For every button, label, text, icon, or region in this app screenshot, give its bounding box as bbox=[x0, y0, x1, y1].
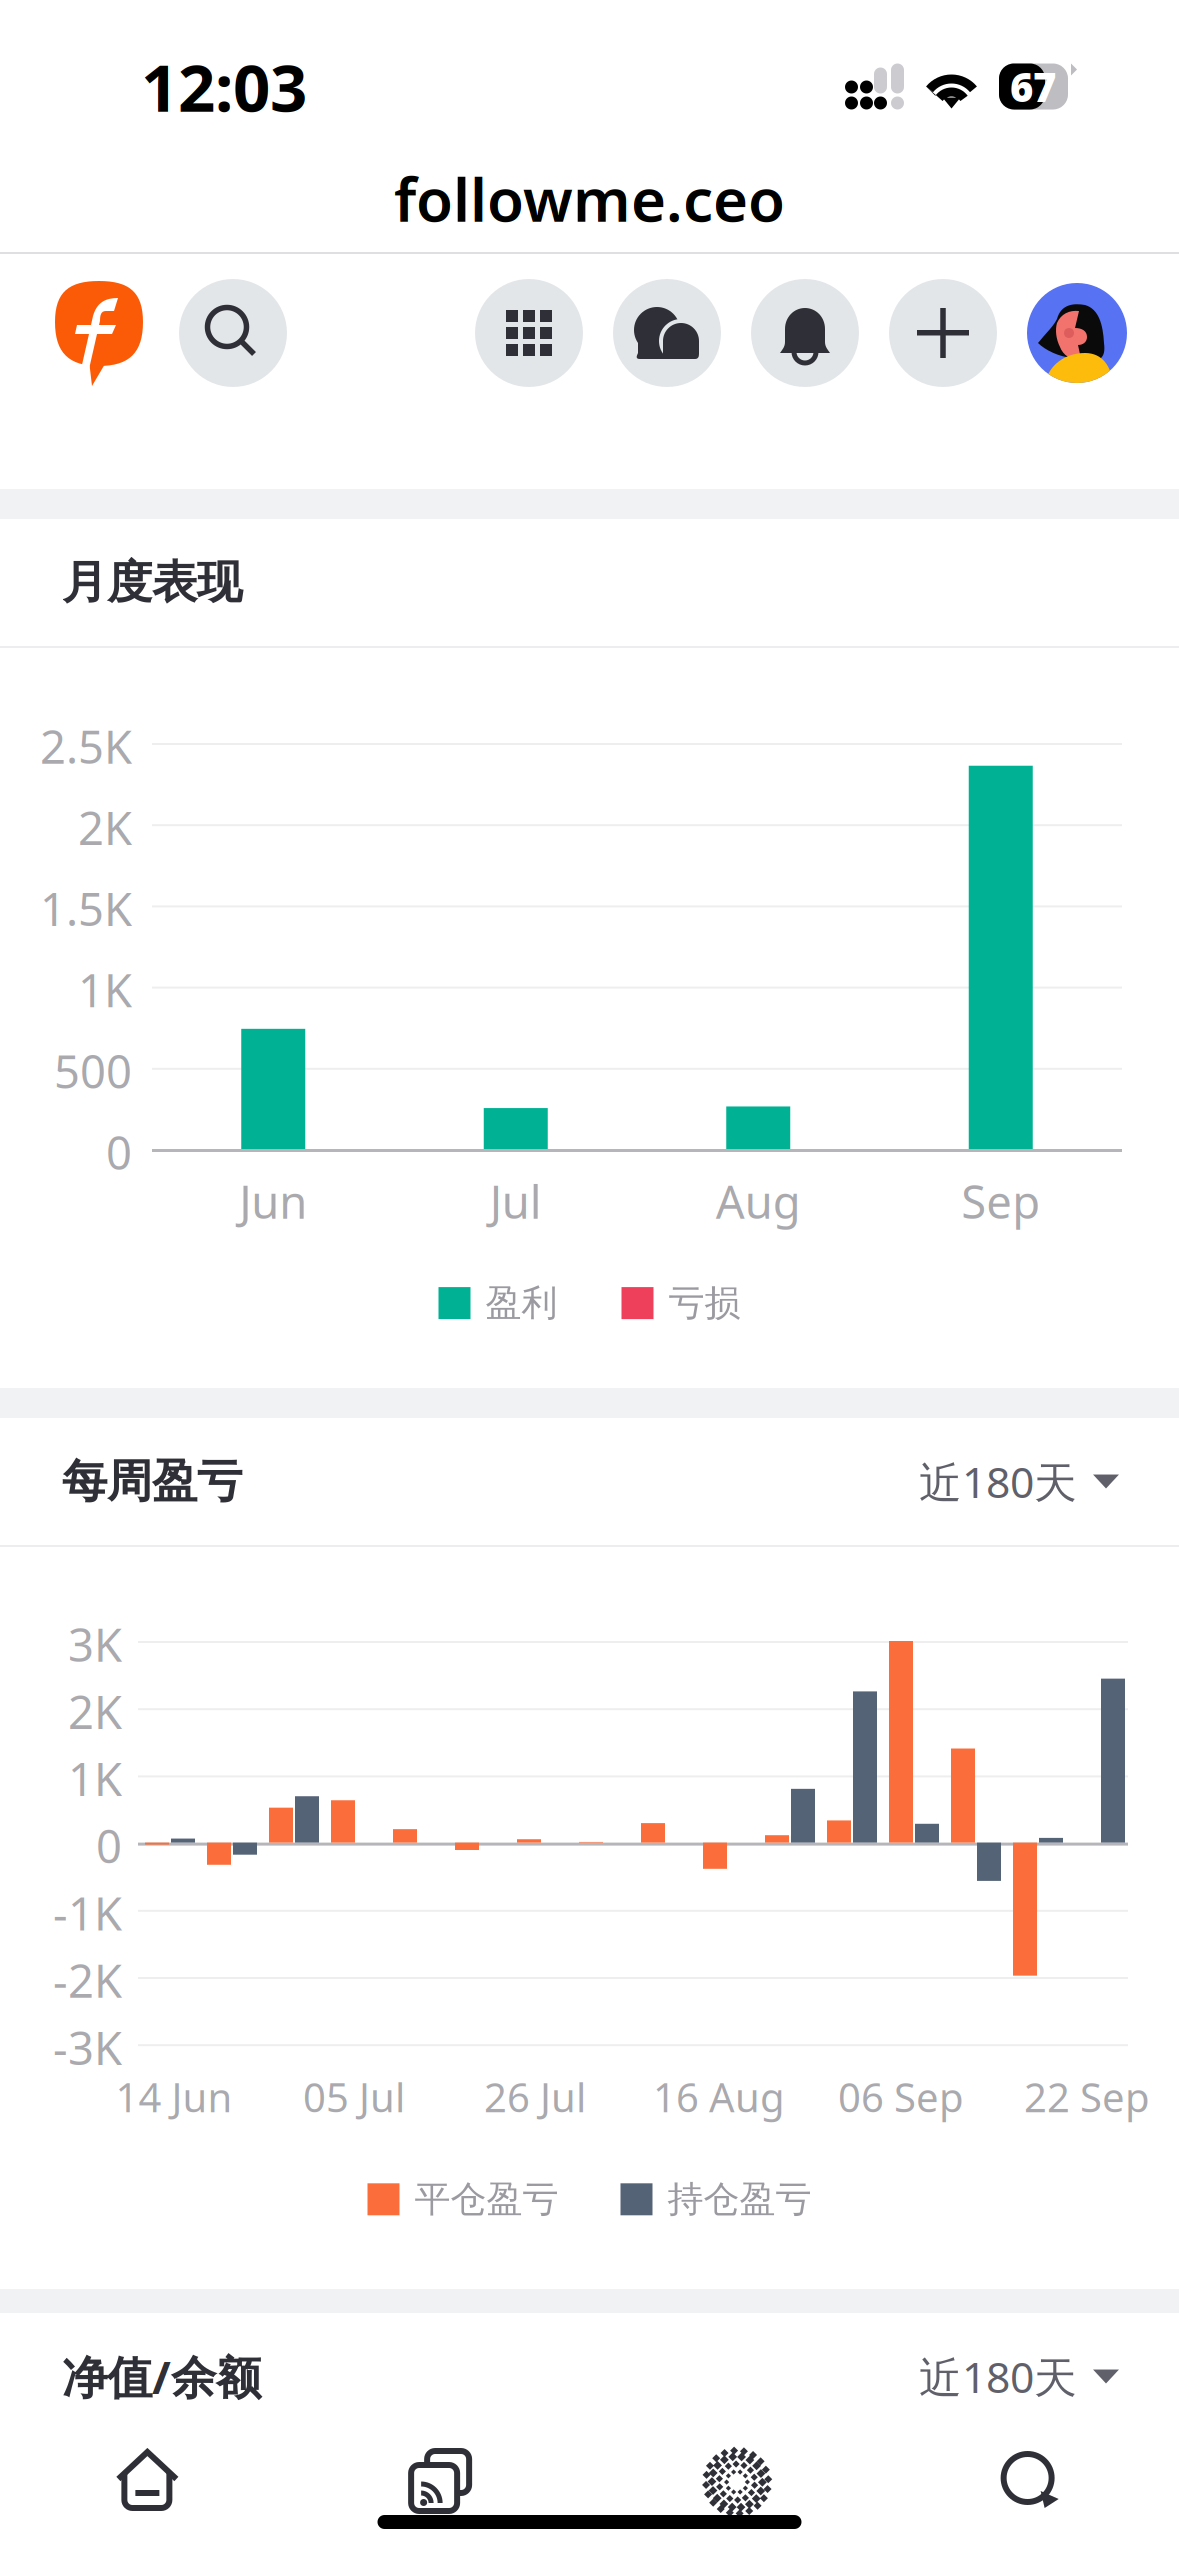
button[interactable]: Home bbox=[0, 2427, 295, 2537]
staticText: 净值/余额 bbox=[62, 2346, 261, 2407]
staticText: 06 Sep bbox=[838, 2070, 964, 2123]
staticText: Aug bbox=[716, 1171, 801, 1231]
staticText: 2K bbox=[68, 1681, 122, 1741]
staticText: 0 bbox=[106, 1122, 132, 1182]
staticText: 0 bbox=[96, 1816, 122, 1876]
button[interactable]: FollowMe bbox=[54, 280, 144, 386]
button[interactable]: 近180天 bbox=[919, 2330, 1119, 2423]
staticText: 1K bbox=[68, 1748, 122, 1809]
staticText: 盈利 bbox=[485, 1281, 557, 1325]
button[interactable]: 近180天 bbox=[919, 1435, 1119, 1528]
staticText: 1.5K bbox=[40, 878, 132, 939]
button[interactable]: Search bbox=[179, 279, 287, 387]
button[interactable]: Apps bbox=[475, 279, 583, 387]
button[interactable]: Discover bbox=[589, 2427, 884, 2537]
staticText: 2K bbox=[78, 797, 132, 857]
staticText: 22 Sep bbox=[1024, 2070, 1150, 2123]
staticText: 500 bbox=[54, 1041, 132, 1101]
staticText: Jul bbox=[490, 1171, 542, 1231]
staticText: -1K bbox=[53, 1883, 122, 1943]
staticText: 月度表现 bbox=[62, 555, 242, 610]
staticText: -2K bbox=[53, 1950, 122, 2010]
staticText: Sep bbox=[961, 1171, 1040, 1231]
staticText: 2.5K bbox=[40, 716, 132, 776]
staticText: 05 Jul bbox=[303, 2070, 405, 2123]
staticText: 每周盈亏 bbox=[62, 1454, 242, 1509]
staticText: Jun bbox=[239, 1171, 307, 1231]
staticText: 平仓盈亏 bbox=[414, 2177, 558, 2221]
staticText: 近180天 bbox=[919, 1453, 1077, 1510]
staticText: 1K bbox=[78, 960, 132, 1020]
button[interactable]: Messages bbox=[613, 279, 721, 387]
staticText: 亏损 bbox=[668, 1281, 740, 1325]
staticText: 16 Aug bbox=[653, 2070, 785, 2123]
staticText: followme.ceo bbox=[394, 159, 785, 238]
staticText: 持仓盈亏 bbox=[667, 2177, 811, 2221]
button[interactable]: Create bbox=[889, 279, 997, 387]
staticText: 26 Jul bbox=[484, 2070, 586, 2123]
staticText: -3K bbox=[53, 2017, 122, 2077]
button[interactable]: Notifications bbox=[751, 279, 859, 387]
button[interactable]: Profile bbox=[1027, 283, 1127, 383]
button[interactable]: Feed bbox=[295, 2427, 590, 2537]
staticText: 14 Jun bbox=[115, 2070, 232, 2123]
staticText: 3K bbox=[68, 1614, 122, 1674]
staticText: 近180天 bbox=[919, 2348, 1077, 2405]
staticText: 67 bbox=[1010, 60, 1056, 113]
button[interactable]: Messages bbox=[884, 2427, 1179, 2537]
staticText: 12:03 bbox=[141, 43, 307, 130]
